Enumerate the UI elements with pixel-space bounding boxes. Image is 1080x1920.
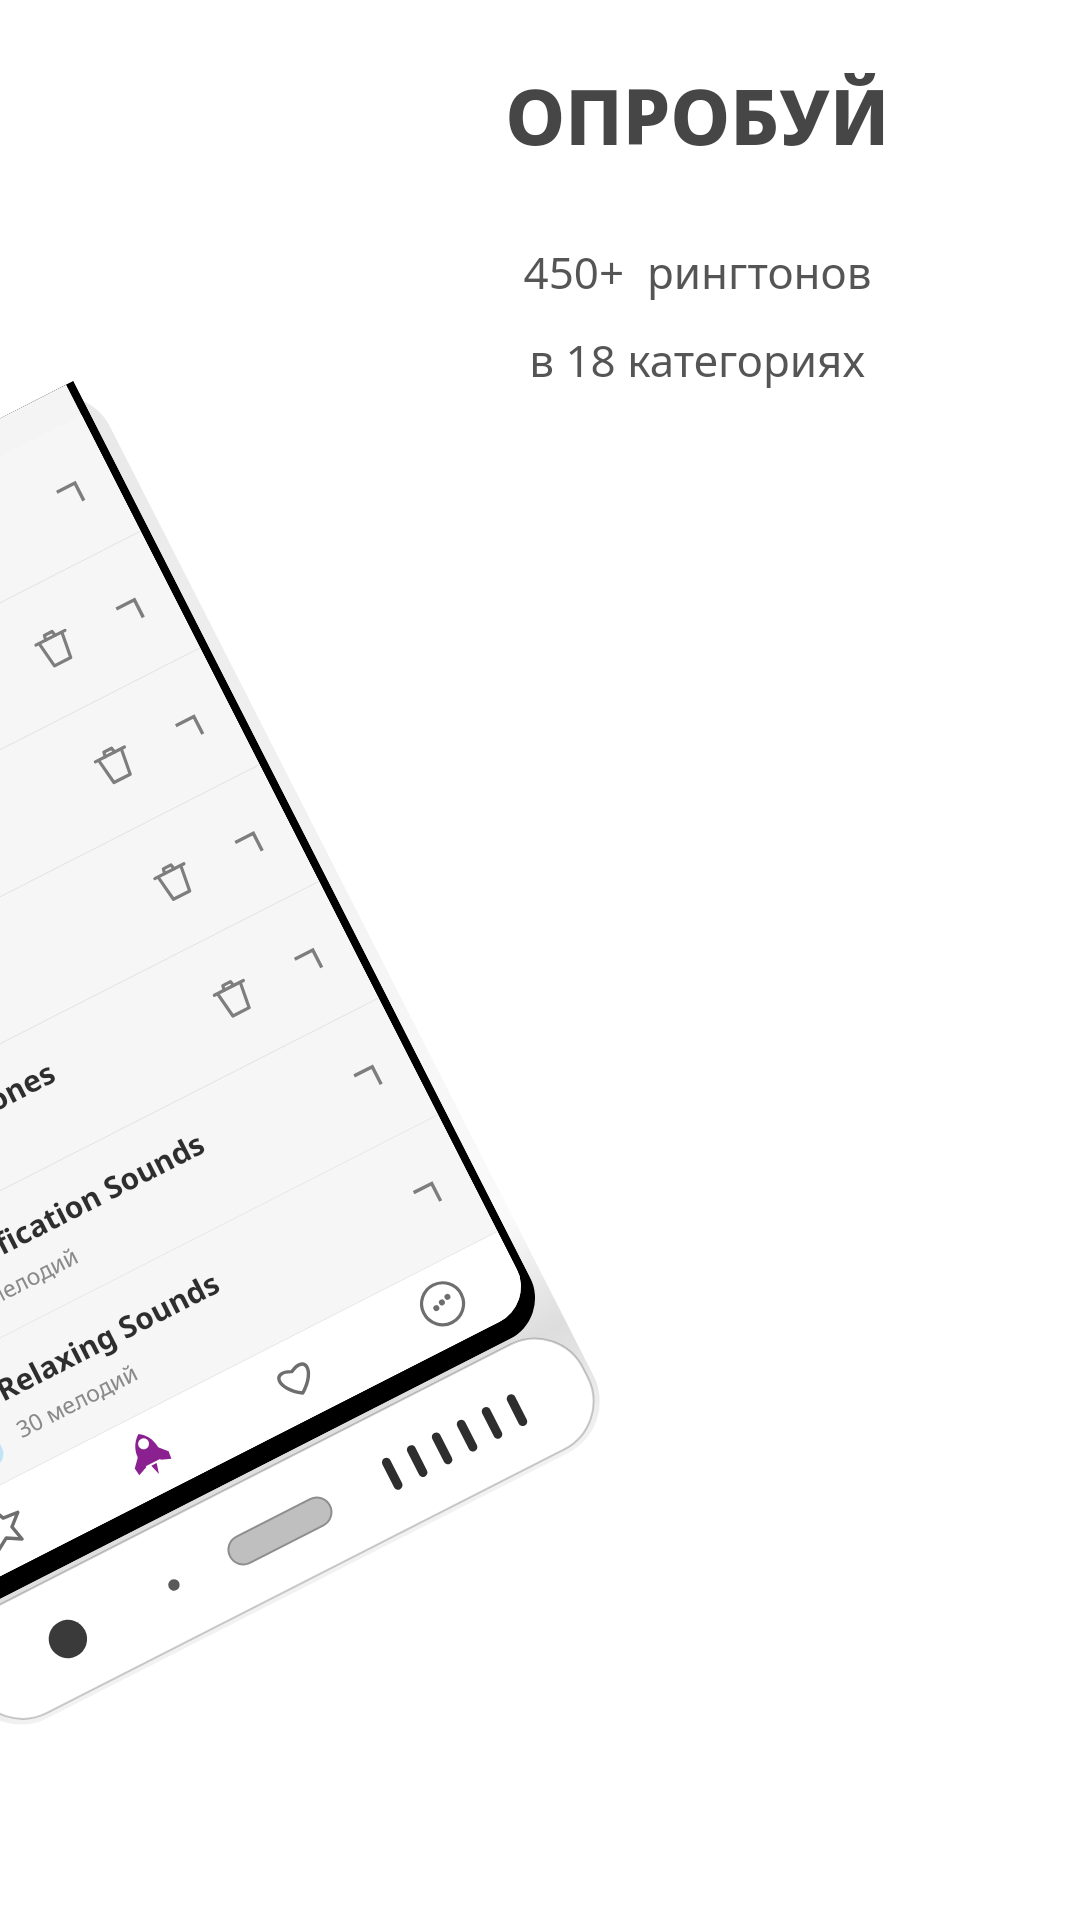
staticText: 30 мелодий [10, 1356, 143, 1444]
staticText: Notification Sounds [0, 1122, 212, 1293]
button[interactable]: Delete [0, 531, 200, 948]
button[interactable]: Избранное [204, 1307, 388, 1454]
button[interactable]: Anime Sounds [0, 765, 319, 1181]
button[interactable]: Слушать [57, 1382, 241, 1529]
staticText: Christmas Ringtones [0, 1051, 62, 1229]
button[interactable]: Christmas Ringtones [0, 882, 379, 1298]
button[interactable]: Relaxing Sounds [0, 1115, 498, 1531]
button[interactable] [0, 415, 141, 831]
staticText: Relaxing Sounds [0, 1262, 226, 1410]
staticText: 40 мелодий [0, 1239, 84, 1327]
button[interactable]: Delete [0, 648, 260, 1065]
button[interactable]: Больше [351, 1232, 535, 1379]
staticText: в 18 категориях [529, 330, 865, 390]
button[interactable]: Delete [136, 842, 214, 920]
staticText: ОПРОБУЙ [505, 64, 890, 168]
button[interactable]: Популярное [0, 1457, 94, 1604]
staticText: 450+ рингтонов [523, 242, 872, 302]
button[interactable]: Notification Sounds [0, 998, 438, 1415]
button[interactable]: Delete [17, 609, 95, 687]
button[interactable]: Delete [195, 959, 273, 1037]
button[interactable]: Delete [76, 726, 154, 804]
